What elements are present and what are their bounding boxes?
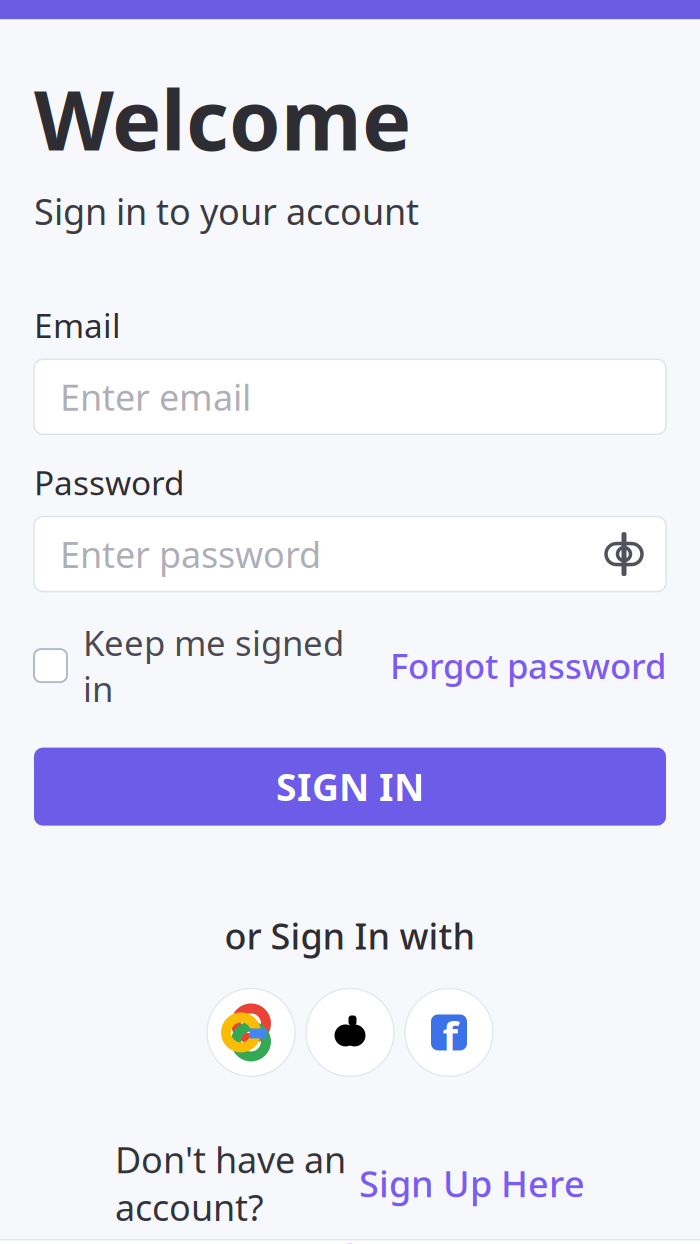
staticText: or Sign In with	[224, 912, 475, 959]
button[interactable]: Show password	[596, 526, 652, 582]
staticText: Keep me signed in	[83, 620, 344, 712]
staticText: Don't have an account?	[115, 1135, 346, 1231]
button[interactable]: Sign Up Here	[359, 1159, 585, 1207]
staticText: Sign Up Here	[359, 1159, 585, 1207]
staticText: Forgot password	[390, 643, 666, 689]
button[interactable]: Login	[233, 1242, 467, 1244]
button[interactable]: Forgot password	[390, 635, 666, 697]
button[interactable]: Keep me signed in	[34, 612, 344, 720]
button[interactable]: SIGN IN	[34, 748, 666, 826]
staticText: SIGN IN	[276, 762, 424, 811]
button[interactable]: Sign in with Google	[204, 985, 298, 1079]
staticText: Enter email	[60, 373, 251, 421]
staticText: Password	[34, 460, 185, 505]
staticText: f	[442, 1009, 457, 1062]
staticText: Sign in to your account	[34, 187, 419, 235]
button[interactable]: Sign in with Apple	[303, 985, 397, 1079]
staticText: Email	[34, 303, 121, 347]
staticText: Enter password	[60, 530, 321, 578]
staticText: Welcome	[34, 63, 411, 173]
button[interactable]: Sign in with Facebook	[402, 985, 496, 1079]
